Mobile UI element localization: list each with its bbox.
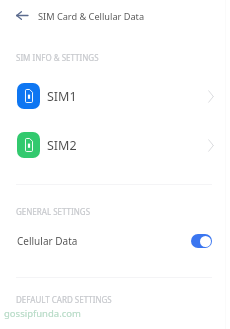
staticText: SIM1 bbox=[47, 88, 77, 105]
staticText: gossipfunda.com bbox=[4, 307, 81, 320]
staticText: SIM2 bbox=[47, 137, 77, 154]
staticText: SIM Card & Cellular Data bbox=[38, 10, 145, 23]
staticText: Cellular Data bbox=[17, 234, 78, 248]
staticText: DEFAULT CARD SETTINGS bbox=[16, 294, 112, 305]
button[interactable]: Cellular Data bbox=[0, 228, 230, 254]
button[interactable]: Back bbox=[13, 6, 31, 24]
staticText: GENERAL SETTINGS bbox=[16, 206, 91, 217]
button[interactable]: SIM2 bbox=[0, 124, 230, 166]
staticText: SIM INFO & SETTINGS bbox=[16, 52, 99, 63]
button[interactable]: SIM1 bbox=[0, 75, 230, 117]
